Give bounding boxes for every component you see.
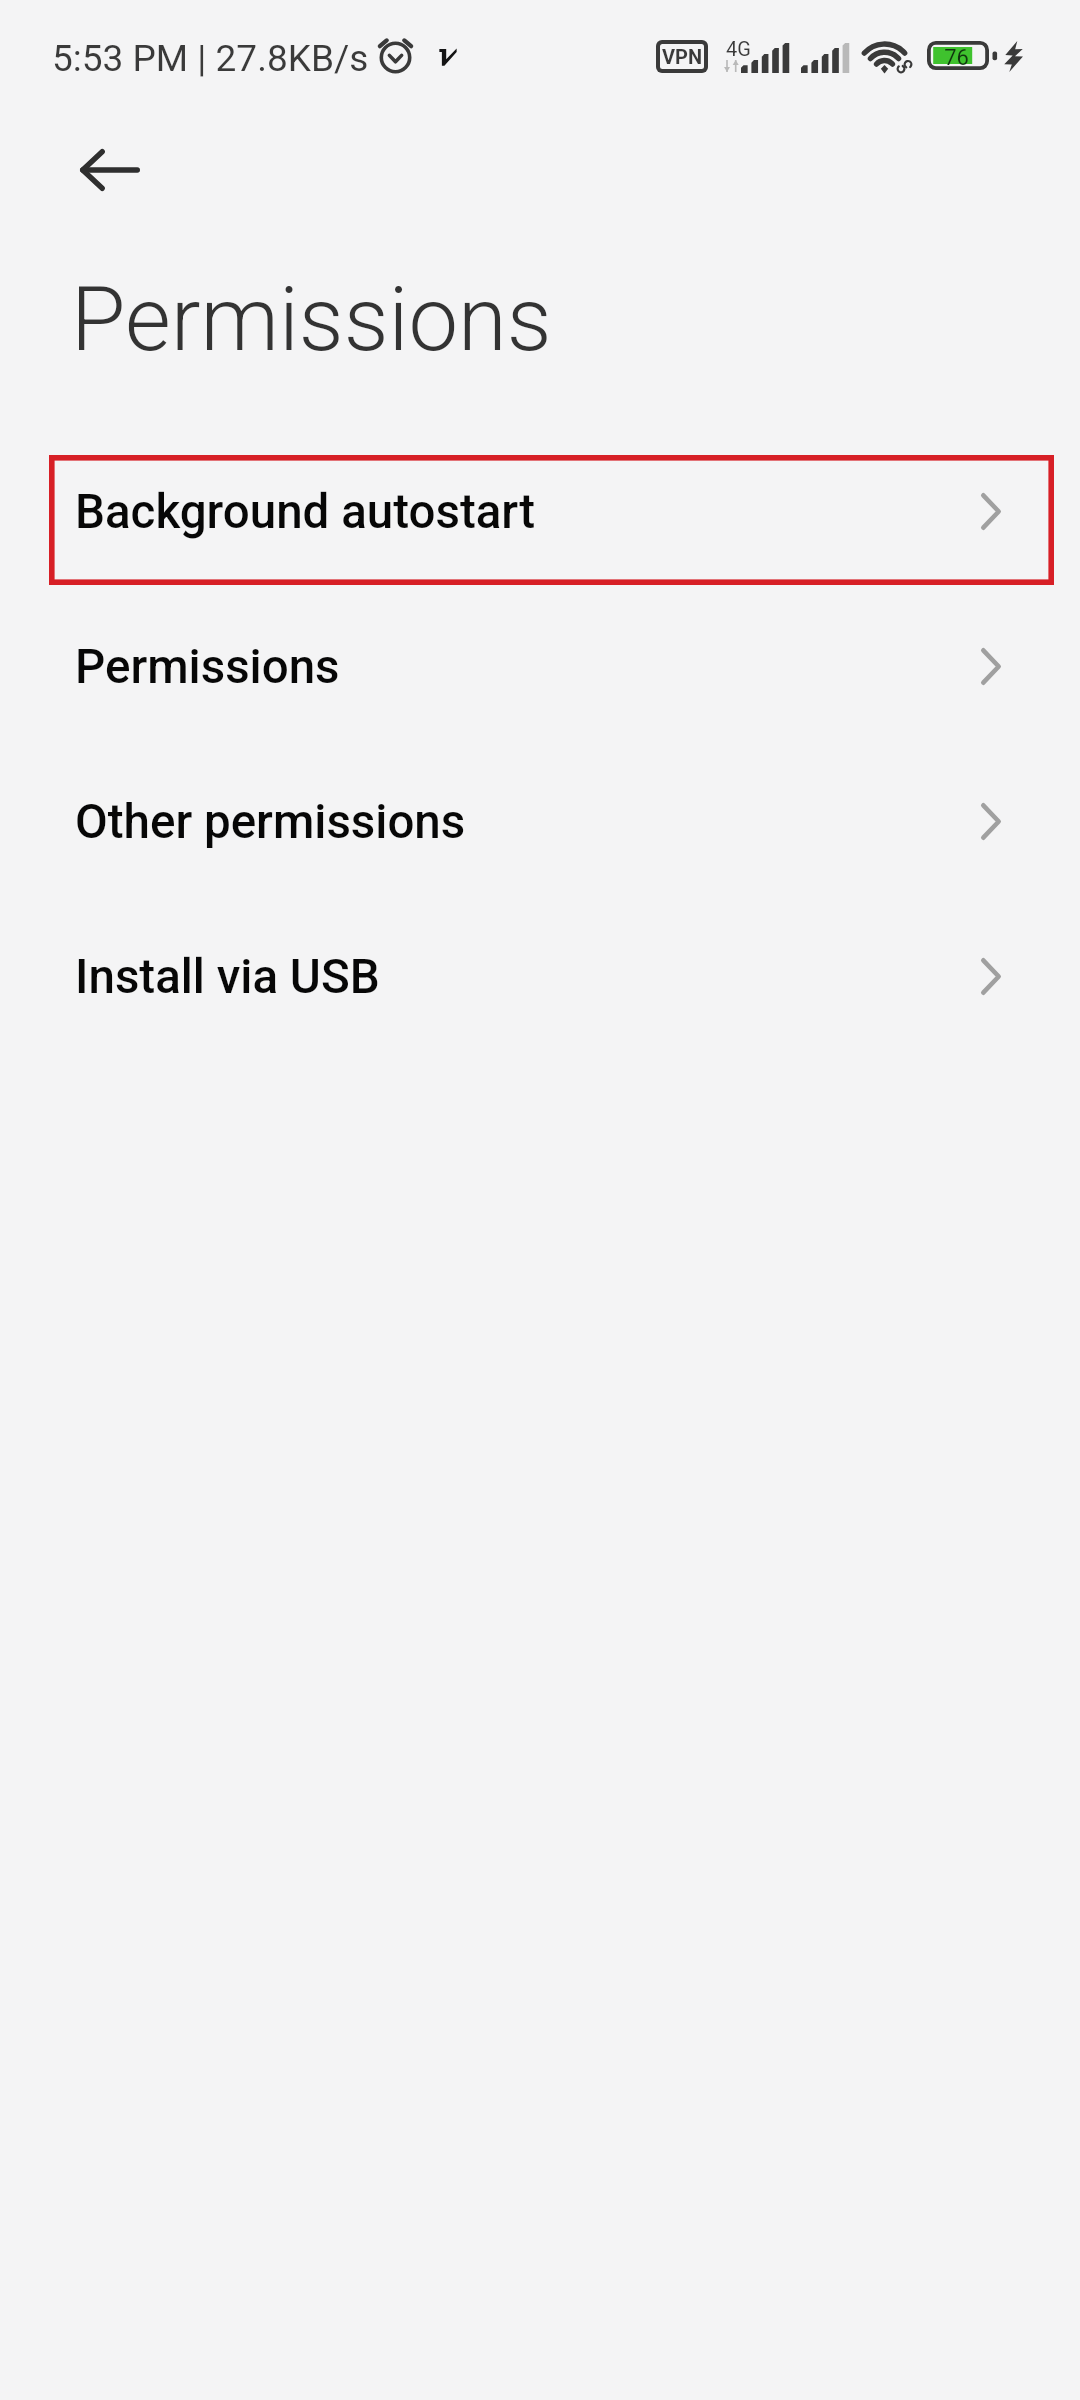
staticText: 76 bbox=[944, 45, 969, 71]
staticText: Background autostart bbox=[75, 484, 536, 540]
staticText: Other permissions bbox=[75, 794, 466, 850]
button[interactable]: Background autostart bbox=[0, 434, 1080, 589]
staticText: Permissions bbox=[75, 639, 340, 695]
button[interactable]: Permissions bbox=[0, 589, 1080, 744]
staticText: 4G bbox=[726, 37, 751, 60]
button[interactable]: Back bbox=[72, 132, 147, 207]
staticText: Install via USB bbox=[75, 949, 380, 1005]
staticText: Permissions bbox=[71, 268, 552, 372]
button[interactable]: Other permissions bbox=[0, 744, 1080, 899]
staticText: 5:53 PM | 27.8KB/s bbox=[52, 37, 369, 80]
staticText: VPN bbox=[662, 45, 703, 68]
button[interactable]: Install via USB bbox=[0, 899, 1080, 1054]
